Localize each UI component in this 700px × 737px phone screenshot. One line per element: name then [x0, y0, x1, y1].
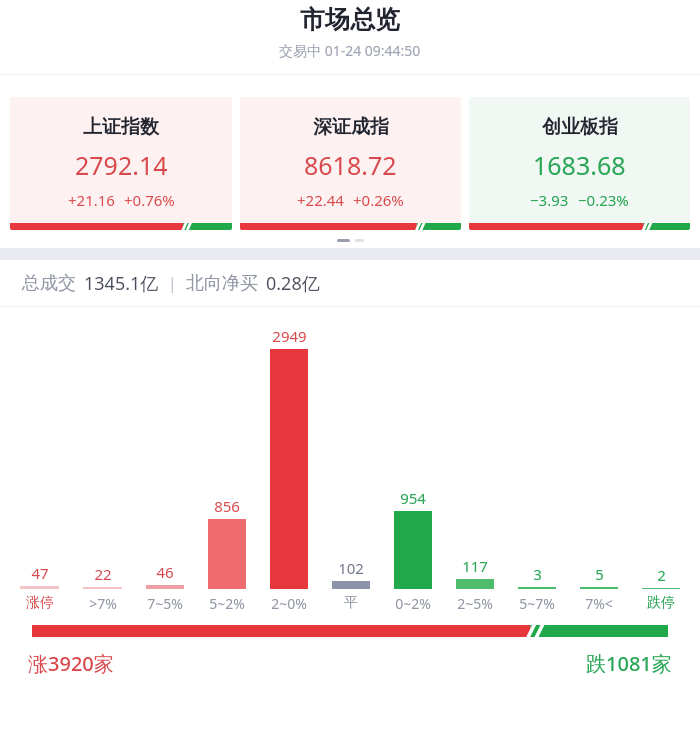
button[interactable]: Page 2	[355, 239, 364, 242]
button[interactable]: 47	[8, 563, 71, 589]
staticText: 7~5%	[147, 594, 183, 613]
staticText: +22.44	[297, 190, 344, 210]
staticText: 总成交	[22, 272, 76, 295]
staticText: 2792.14	[75, 148, 168, 182]
staticText: 上证指数	[83, 115, 159, 139]
staticText: 7%<	[585, 594, 613, 613]
staticText: 跌停	[647, 594, 675, 612]
button[interactable]: 3	[506, 564, 568, 589]
button[interactable]: 深证成指	[240, 97, 461, 230]
staticText: 2~0%	[271, 594, 307, 613]
staticText: 2949	[272, 326, 307, 346]
staticText: 47	[31, 563, 49, 583]
staticText: 5~7%	[519, 594, 555, 613]
button[interactable]: 涨3920家	[28, 650, 114, 677]
staticText: 856	[214, 496, 240, 516]
staticText: 2~5%	[457, 594, 493, 613]
button[interactable]: 上证指数	[10, 97, 232, 230]
staticText: 2	[657, 565, 666, 585]
staticText: +0.76%	[124, 190, 175, 210]
button[interactable]: 跌1081家	[586, 650, 672, 677]
button[interactable]: 954	[382, 488, 444, 589]
staticText: 北向净买	[186, 272, 258, 295]
staticText: 5~2%	[209, 594, 245, 613]
button[interactable]: 5	[568, 564, 630, 589]
staticText: 1345.1亿	[84, 271, 159, 296]
staticText: 117	[462, 556, 488, 576]
staticText: 8618.72	[304, 148, 397, 182]
button[interactable]: 2	[630, 565, 692, 589]
staticText: >7%	[89, 594, 117, 613]
staticText: 3	[533, 564, 542, 584]
button[interactable]: 总成交	[0, 260, 700, 306]
staticText: 0~2%	[395, 594, 431, 613]
staticText: 平	[344, 594, 358, 612]
staticText: 22	[94, 564, 112, 584]
staticText: +0.26%	[353, 190, 404, 210]
button[interactable]: Advancers vs decliners	[32, 625, 668, 637]
staticText: 5	[595, 564, 604, 584]
staticText: −3.93	[530, 190, 569, 210]
button[interactable]: Page 1	[337, 239, 350, 242]
staticText: −0.23%	[578, 190, 629, 210]
staticText: 0.28亿	[266, 271, 320, 296]
button[interactable]: 102	[320, 558, 382, 589]
staticText: |	[168, 272, 177, 294]
staticText: +21.16	[68, 190, 115, 210]
staticText: 创业板指	[542, 115, 618, 139]
button[interactable]: 22	[71, 564, 134, 589]
staticText: 954	[400, 488, 426, 508]
staticText: 市场总览	[300, 4, 400, 35]
button[interactable]: 创业板指	[469, 97, 690, 230]
staticText: 1683.68	[533, 148, 626, 182]
staticText: 102	[338, 558, 364, 578]
button[interactable]: 2949	[258, 326, 320, 589]
button[interactable]: 46	[134, 562, 196, 589]
staticText: 交易中 01-24 09:44:50	[279, 41, 421, 60]
button[interactable]: 856	[196, 496, 258, 589]
staticText: 46	[156, 562, 174, 582]
staticText: 涨停	[26, 594, 54, 612]
staticText: 深证成指	[313, 115, 389, 139]
button[interactable]: 117	[444, 556, 506, 589]
